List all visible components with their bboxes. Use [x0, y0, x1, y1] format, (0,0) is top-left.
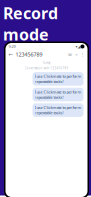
- staticText: repeatable tasks!: [34, 110, 63, 115]
- staticText: repeatable tasks!: [34, 79, 63, 84]
- staticText: ←: [8, 51, 12, 58]
- staticText: 9:29: [8, 44, 15, 49]
- staticText: ⋮: [80, 52, 84, 57]
- staticText: ▾◢: [75, 44, 80, 49]
- staticText: I use Clickmate to perform: [34, 105, 81, 110]
- staticText: Conversation with 123456789: [24, 66, 68, 70]
- staticText: ☏: [67, 52, 72, 57]
- staticText: today: [43, 61, 50, 64]
- staticText: Gives possibility to record your: [5, 48, 86, 66]
- staticText: Record mode: [3, 2, 58, 45]
- staticText: 123456789: [15, 51, 42, 58]
- staticText: ⌕: [75, 52, 77, 56]
- staticText: I use Clickmate to perform: [34, 74, 81, 79]
- staticText: repeatable tasks!: [34, 94, 63, 100]
- staticText: touch input and repeat it!: [5, 67, 85, 76]
- staticText: I use Clickmate to perform: [34, 89, 81, 94]
